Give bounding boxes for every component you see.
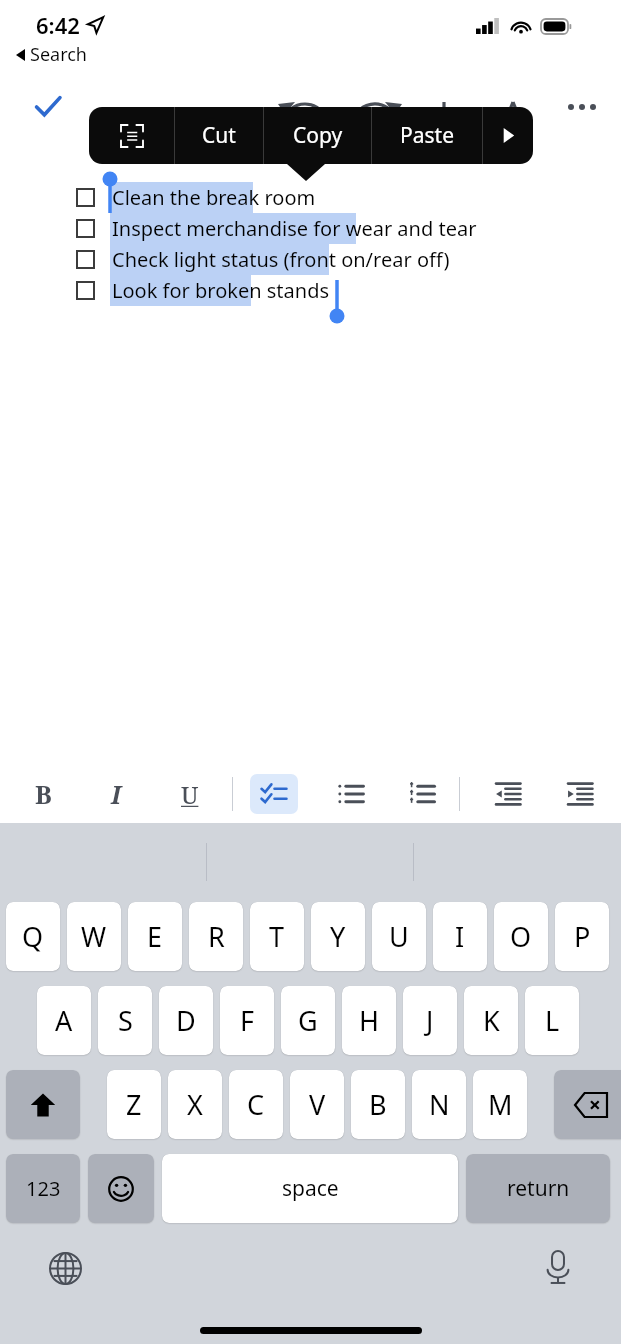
button[interactable]: B bbox=[351, 1070, 405, 1139]
button[interactable]: Z bbox=[107, 1070, 161, 1139]
button[interactable]: R bbox=[189, 902, 243, 971]
staticText: return bbox=[507, 1174, 570, 1203]
button[interactable]: W bbox=[67, 902, 121, 971]
button[interactable]: N bbox=[412, 1070, 466, 1139]
button[interactable]: Scan text bbox=[89, 107, 174, 164]
button[interactable]: More bbox=[483, 128, 533, 143]
button[interactable]: Change keyboard bbox=[40, 1243, 90, 1293]
staticText: G bbox=[298, 1002, 318, 1039]
staticText: D bbox=[176, 1002, 196, 1039]
button[interactable]: L bbox=[525, 986, 579, 1055]
staticText: Inspect merchandise for wear and tear bbox=[112, 215, 477, 242]
staticText: Z bbox=[126, 1086, 142, 1123]
staticText: space bbox=[282, 1174, 339, 1203]
staticText: Q bbox=[22, 918, 44, 955]
staticText: U bbox=[389, 918, 409, 955]
staticText: I bbox=[111, 777, 122, 811]
button[interactable]: D bbox=[159, 986, 213, 1055]
button[interactable]: Increase indent bbox=[551, 774, 609, 814]
button[interactable]: U bbox=[372, 902, 426, 971]
staticText: 123 bbox=[26, 1175, 61, 1202]
button[interactable]: Shift bbox=[6, 1070, 80, 1139]
staticText: E bbox=[147, 918, 163, 955]
button[interactable]: Done bbox=[26, 85, 70, 129]
button[interactable]: H bbox=[342, 986, 396, 1055]
staticText: T bbox=[269, 918, 285, 955]
button[interactable]: I bbox=[433, 902, 487, 971]
staticText: Check light status (front on/rear off) bbox=[112, 246, 450, 273]
button[interactable]: E bbox=[128, 902, 182, 971]
button[interactable]: Underline bbox=[161, 774, 219, 814]
staticText: N bbox=[429, 1086, 450, 1123]
button[interactable]: Bulleted list bbox=[322, 774, 380, 814]
button[interactable]: More options bbox=[560, 85, 604, 129]
staticText: L bbox=[545, 1002, 560, 1039]
button[interactable]: Clean the break room bbox=[0, 182, 621, 213]
staticText: M bbox=[488, 1086, 513, 1123]
button[interactable]: Check light status (front on/rear off) bbox=[0, 244, 621, 275]
button[interactable]: Dictate bbox=[533, 1243, 583, 1293]
button[interactable]: return bbox=[466, 1154, 610, 1223]
button[interactable]: F bbox=[220, 986, 274, 1055]
button[interactable]: K bbox=[464, 986, 518, 1055]
button[interactable]: V bbox=[290, 1070, 344, 1139]
button[interactable]: Numbers bbox=[6, 1154, 80, 1223]
button[interactable]: Look for broken stands bbox=[0, 275, 621, 306]
staticText: K bbox=[483, 1002, 500, 1039]
staticText: 6:42 bbox=[36, 10, 80, 40]
staticText: W bbox=[81, 918, 107, 955]
button[interactable]: Inspect merchandise for wear and tear bbox=[0, 213, 621, 244]
staticText: Cut bbox=[202, 121, 236, 150]
staticText: S bbox=[118, 1002, 133, 1039]
button[interactable]: Q bbox=[6, 902, 60, 971]
staticText: Search bbox=[30, 42, 87, 67]
staticText: Y bbox=[330, 918, 346, 955]
staticText: X bbox=[187, 1086, 203, 1123]
button[interactable]: A bbox=[37, 986, 91, 1055]
staticText: Clean the break room bbox=[112, 184, 316, 211]
button[interactable]: Paste bbox=[372, 107, 482, 164]
button[interactable]: Numbered list bbox=[393, 774, 451, 814]
button[interactable]: Checklist bbox=[250, 774, 298, 814]
button[interactable]: Y bbox=[311, 902, 365, 971]
button[interactable]: Bold bbox=[14, 774, 72, 814]
button[interactable]: Backspace bbox=[554, 1070, 621, 1139]
button[interactable]: Emoji bbox=[88, 1154, 154, 1223]
button[interactable]: P bbox=[555, 902, 609, 971]
staticText: I bbox=[455, 918, 465, 955]
staticText: C bbox=[247, 1086, 265, 1123]
button[interactable]: T bbox=[250, 902, 304, 971]
staticText: Paste bbox=[400, 121, 454, 150]
staticText: H bbox=[359, 1002, 380, 1039]
button[interactable]: Italic bbox=[87, 774, 145, 814]
button[interactable]: O bbox=[494, 902, 548, 971]
staticText: U bbox=[181, 778, 199, 811]
button[interactable]: space bbox=[162, 1154, 458, 1223]
button[interactable]: S bbox=[98, 986, 152, 1055]
staticText: A bbox=[55, 1002, 73, 1039]
staticText: V bbox=[309, 1086, 326, 1123]
button[interactable]: J bbox=[403, 986, 457, 1055]
button[interactable]: Copy bbox=[264, 107, 371, 164]
staticText: B bbox=[369, 1086, 387, 1123]
staticText: P bbox=[574, 918, 591, 955]
staticText: Copy bbox=[293, 121, 343, 150]
button[interactable]: G bbox=[281, 986, 335, 1055]
staticText: R bbox=[208, 918, 225, 955]
staticText: O bbox=[510, 918, 532, 955]
button[interactable]: M bbox=[473, 1070, 527, 1139]
staticText: B bbox=[35, 777, 52, 811]
button[interactable]: Cut bbox=[175, 107, 263, 164]
staticText: J bbox=[426, 1002, 434, 1039]
button[interactable]: Decrease indent bbox=[479, 774, 537, 814]
staticText: Look for broken stands bbox=[112, 277, 330, 304]
staticText: F bbox=[240, 1002, 255, 1039]
button[interactable]: Search bbox=[14, 40, 89, 69]
button[interactable]: C bbox=[229, 1070, 283, 1139]
button[interactable]: X bbox=[168, 1070, 222, 1139]
